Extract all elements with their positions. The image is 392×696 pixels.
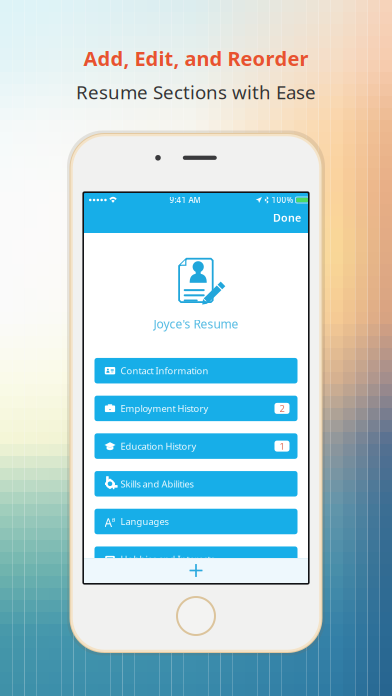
button[interactable]: Hobbies and Interests (94, 546, 297, 572)
button[interactable]: Skills and Abilities (94, 471, 297, 496)
staticText: Hobbies and Interests (120, 553, 214, 565)
staticText: Resume Sections with Ease (76, 80, 316, 104)
staticText: 9:41 AM (169, 195, 200, 205)
staticText: Contact Information (120, 364, 208, 377)
staticText: Employment History (120, 402, 208, 415)
button[interactable]: Education History (94, 433, 297, 459)
staticText: Languages (120, 515, 168, 528)
staticText: Done (273, 210, 301, 225)
staticText: 1 (279, 440, 284, 452)
staticText: Joyce's Resume (153, 316, 238, 332)
button[interactable]: Add section (84, 558, 308, 583)
staticText: a (112, 515, 116, 524)
staticText: A (105, 514, 113, 530)
staticText: Education History (120, 440, 196, 452)
button[interactable]: Employment History (94, 396, 297, 421)
button[interactable]: Contact Information (94, 358, 297, 383)
button[interactable]: A (94, 509, 297, 534)
staticText: Add, Edit, and Reorder (83, 45, 308, 72)
button[interactable]: Done (264, 207, 308, 228)
staticText: 2 (279, 402, 284, 415)
staticText: 100% (271, 195, 293, 205)
staticText: Skills and Abilities (120, 478, 193, 490)
